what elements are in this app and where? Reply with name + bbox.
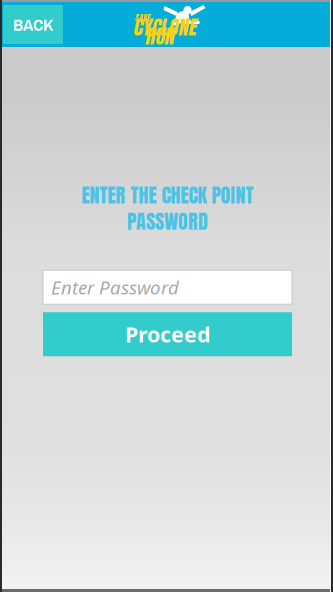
staticText: Proceed [125,320,210,349]
button[interactable]: Proceed [43,312,292,356]
staticText: PASSWORD [127,206,208,236]
staticText: ENTER THE CHECK POINT [81,180,253,210]
staticText: BACK [13,13,53,36]
staticText: Enter Password [51,274,179,300]
button[interactable]: BACK [3,5,63,44]
staticText: SAVE [134,11,149,23]
staticText: CYCLONE [132,12,195,42]
staticText: RUN [144,21,173,51]
